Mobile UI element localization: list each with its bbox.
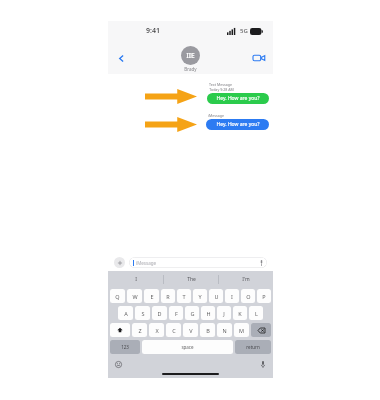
staticText: Z [138,327,142,334]
button[interactable]: Video call [251,50,267,66]
button[interactable]: E [144,289,159,303]
button[interactable]: T [177,289,191,303]
button[interactable]: B [200,323,215,337]
staticText: U [214,293,219,300]
staticText: iMessage [208,113,224,118]
staticText: R [166,293,170,300]
staticText: M [239,327,244,334]
button[interactable]: Shift [110,323,130,337]
staticText: 9:41 [146,26,160,36]
button[interactable]: X [149,323,164,337]
staticText: V [189,327,193,334]
staticText: Text Message [209,82,232,87]
staticText: T [182,293,186,300]
button[interactable]: Hey. How are you? [207,93,269,104]
button[interactable]: Z [132,323,147,337]
staticText: S [141,310,145,317]
button[interactable]: J [217,306,231,320]
staticText: I'm [242,276,250,283]
button[interactable]: Hey. How are you? [206,119,269,130]
button[interactable]: G [185,306,199,320]
staticText: The [187,276,196,283]
staticText: D [157,310,162,317]
button[interactable]: 123 [110,340,140,354]
button[interactable]: C [166,323,181,337]
button[interactable]: I'm [219,276,273,283]
button[interactable]: U [209,289,223,303]
staticText: B [206,327,210,334]
button[interactable]: I [108,276,163,283]
button[interactable]: F [169,306,183,320]
staticText: H [206,310,211,317]
button[interactable]: O [241,289,255,303]
button[interactable]: R [161,289,175,303]
button[interactable]: I [225,289,239,303]
staticText: W [132,293,138,300]
staticText: 5G [240,27,248,35]
button[interactable]: M [234,323,249,337]
button[interactable]: N [217,323,232,337]
staticText: C [172,327,176,334]
staticText: P [262,293,266,300]
staticText: G [190,310,195,317]
button[interactable]: Back [113,50,129,66]
staticText: E [150,293,154,300]
staticText: Y [198,293,202,300]
staticText: Hey. How are you? [216,121,260,128]
button[interactable]: Y [193,289,207,303]
staticText: Brady [184,66,197,72]
staticText: Q [115,293,120,300]
staticText: Hey. How are you? [216,95,260,102]
staticText: A [124,310,128,317]
button[interactable]: Delete [251,323,271,337]
button[interactable]: The [164,276,218,283]
staticText: return [246,344,260,350]
staticText: K [238,310,242,317]
button[interactable]: W [127,289,142,303]
staticText: 123 [121,344,129,350]
button[interactable]: space [142,340,233,354]
button[interactable]: V [183,323,198,337]
staticText: Today 9:28 AM [209,87,234,92]
staticText: L [255,310,258,317]
staticText: IIE [186,51,195,60]
button[interactable]: L [249,306,263,320]
button[interactable]: Add attachment [114,257,125,268]
staticText: F [175,310,178,317]
staticText: X [155,327,159,334]
button[interactable]: Emoji [114,360,122,368]
button[interactable]: return [235,340,271,354]
staticText: N [222,327,227,334]
button[interactable]: H [201,306,215,320]
staticText: space [181,344,194,350]
staticText: I [135,276,137,283]
button[interactable]: S [135,306,150,320]
button[interactable]: A [118,306,133,320]
button[interactable]: iMessage [129,257,267,268]
staticText: I [231,293,233,300]
button[interactable]: Q [110,289,125,303]
button[interactable]: P [257,289,271,303]
button[interactable]: Dictation [259,360,267,368]
button[interactable]: K [233,306,247,320]
staticText: O [246,293,251,300]
button[interactable]: IIE [181,46,200,72]
staticText: J [223,310,225,317]
staticText: iMessage [136,260,156,266]
button[interactable]: D [152,306,167,320]
